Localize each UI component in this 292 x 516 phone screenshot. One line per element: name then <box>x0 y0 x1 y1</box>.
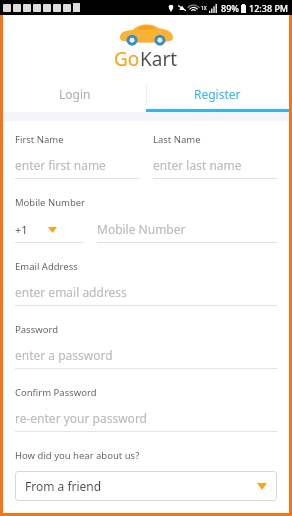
staticText: enter first name <box>15 157 106 173</box>
staticText: 89% <box>221 2 239 14</box>
staticText: First Name <box>15 133 64 146</box>
staticText: 12:38 PM <box>249 2 289 14</box>
button[interactable]: Confirm Password <box>15 386 277 432</box>
staticText: enter a password <box>15 347 113 363</box>
staticText: Kart <box>140 46 178 72</box>
staticText: Mobile Number <box>97 221 277 237</box>
staticText: Mobile Number <box>15 196 86 209</box>
staticText: Email Address <box>15 260 78 273</box>
staticText: Go <box>114 46 140 72</box>
staticText: Password <box>15 323 58 336</box>
button[interactable]: Register <box>146 78 289 109</box>
staticText: re-enter your password <box>15 410 147 426</box>
staticText: Last Name <box>153 133 201 146</box>
staticText: 1X <box>201 5 207 12</box>
button[interactable]: Email Address <box>15 260 277 306</box>
button[interactable]: From a friend <box>15 471 277 501</box>
button[interactable]: Password <box>15 323 277 369</box>
staticText: enter email address <box>15 284 127 300</box>
staticText: Confirm Password <box>15 386 97 399</box>
staticText: Register <box>194 86 241 102</box>
button[interactable]: Country code <box>15 222 83 237</box>
staticText: enter last name <box>153 157 242 173</box>
staticText: How did you hear about us? <box>15 449 140 462</box>
button[interactable]: Login <box>3 78 146 109</box>
button[interactable]: First Name <box>15 133 139 179</box>
staticText: From a friend <box>25 478 257 494</box>
button[interactable]: Last Name <box>153 133 277 179</box>
staticText: +1 <box>15 222 28 237</box>
staticText: Login <box>59 86 91 102</box>
